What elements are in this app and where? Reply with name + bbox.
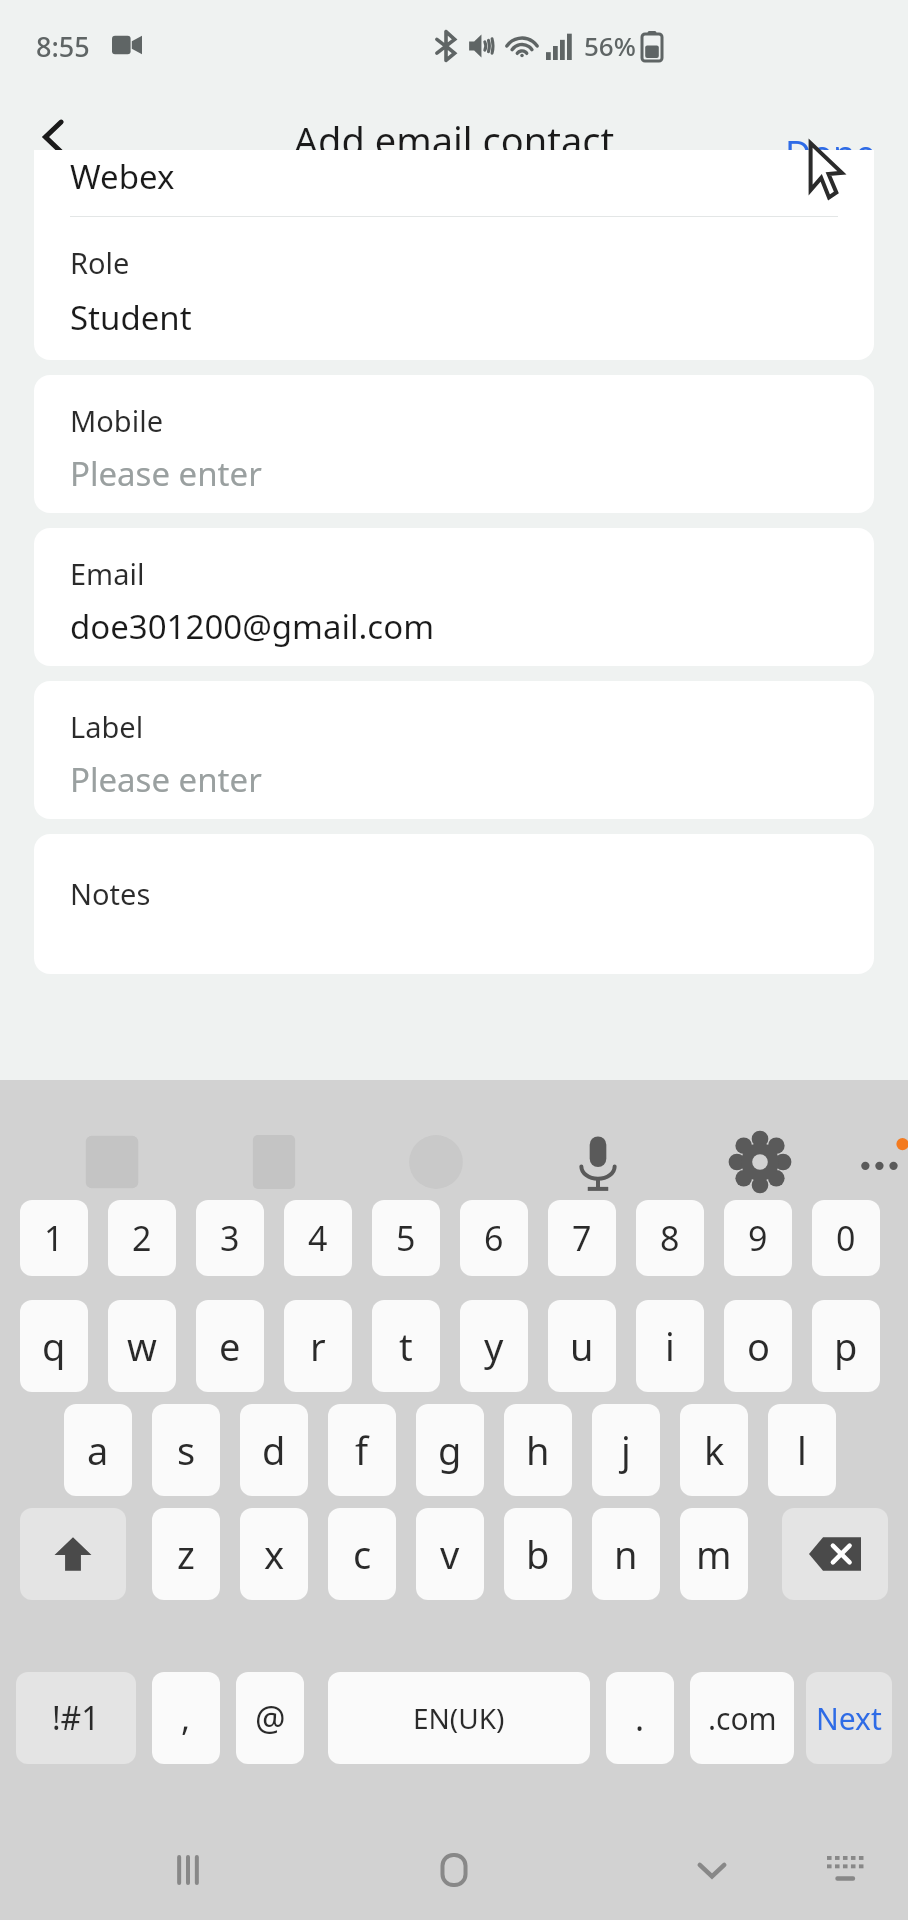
- staticText: 1: [44, 1215, 64, 1261]
- button[interactable]: .com: [690, 1672, 794, 1764]
- staticText: Student: [70, 295, 192, 340]
- button[interactable]: !#1: [16, 1672, 136, 1764]
- button[interactable]: Switch keyboard: [818, 1842, 874, 1898]
- staticText: @: [255, 1695, 286, 1741]
- button[interactable]: 4: [284, 1200, 352, 1276]
- staticText: !#1: [52, 1696, 100, 1740]
- staticText: 9: [748, 1215, 768, 1261]
- staticText: 56%: [584, 28, 636, 63]
- button[interactable]: 2: [108, 1200, 176, 1276]
- staticText: o: [747, 1320, 770, 1372]
- staticText: Done: [785, 129, 876, 178]
- staticText: t: [399, 1320, 413, 1372]
- staticText: .: [635, 1695, 645, 1741]
- staticText: e: [219, 1320, 241, 1372]
- button[interactable]: y: [460, 1300, 528, 1392]
- button[interactable]: GIF: [242, 1130, 306, 1194]
- button[interactable]: w: [108, 1300, 176, 1392]
- staticText: .com: [708, 1698, 777, 1739]
- button[interactable]: Mobile: [34, 375, 874, 513]
- button[interactable]: u: [548, 1300, 616, 1392]
- staticText: f: [355, 1424, 369, 1476]
- staticText: l: [797, 1424, 807, 1476]
- button[interactable]: h: [504, 1404, 572, 1496]
- staticText: z: [177, 1528, 195, 1580]
- button[interactable]: 5: [372, 1200, 440, 1276]
- button[interactable]: b: [504, 1508, 572, 1600]
- button[interactable]: k: [680, 1404, 748, 1496]
- staticText: x: [264, 1528, 285, 1580]
- staticText: p: [834, 1320, 858, 1372]
- button[interactable]: Emoji: [404, 1130, 468, 1194]
- button[interactable]: ,: [152, 1672, 220, 1764]
- button[interactable]: 0: [812, 1200, 880, 1276]
- staticText: j: [621, 1424, 631, 1476]
- button[interactable]: Email: [34, 528, 874, 666]
- button[interactable]: .: [606, 1672, 674, 1764]
- staticText: 5: [396, 1215, 416, 1261]
- staticText: Email: [70, 554, 145, 593]
- button[interactable]: v: [416, 1508, 484, 1600]
- button[interactable]: o: [724, 1300, 792, 1392]
- button[interactable]: j: [592, 1404, 660, 1496]
- button[interactable]: c: [328, 1508, 396, 1600]
- button[interactable]: 8: [636, 1200, 704, 1276]
- staticText: ,: [181, 1695, 191, 1741]
- button[interactable]: Shift: [20, 1508, 126, 1600]
- staticText: 0: [836, 1215, 856, 1261]
- button[interactable]: @: [236, 1672, 304, 1764]
- button[interactable]: Webex: [34, 150, 874, 360]
- staticText: a: [87, 1424, 109, 1476]
- staticText: y: [484, 1320, 504, 1372]
- button[interactable]: 3: [196, 1200, 264, 1276]
- button[interactable]: i: [636, 1300, 704, 1392]
- button[interactable]: s: [152, 1404, 220, 1496]
- button[interactable]: EN(UK): [328, 1672, 590, 1764]
- staticText: r: [310, 1320, 326, 1372]
- staticText: m: [696, 1528, 732, 1580]
- button[interactable]: 9: [724, 1200, 792, 1276]
- button[interactable]: Back: [20, 102, 90, 172]
- button[interactable]: 1: [20, 1200, 88, 1276]
- staticText: Next: [816, 1698, 882, 1739]
- button[interactable]: Next: [806, 1672, 892, 1764]
- button[interactable]: Hide keyboard: [684, 1842, 740, 1898]
- button[interactable]: g: [416, 1404, 484, 1496]
- button[interactable]: e: [196, 1300, 264, 1392]
- button[interactable]: r: [284, 1300, 352, 1392]
- staticText: 2: [132, 1215, 152, 1261]
- button[interactable]: Label: [34, 681, 874, 819]
- button[interactable]: Notes: [34, 834, 874, 974]
- button[interactable]: 6: [460, 1200, 528, 1276]
- staticText: Please enter: [70, 451, 262, 496]
- button[interactable]: q: [20, 1300, 88, 1392]
- button[interactable]: p: [812, 1300, 880, 1392]
- staticText: h: [526, 1424, 550, 1476]
- button[interactable]: Recents: [160, 1842, 216, 1898]
- button[interactable]: t: [372, 1300, 440, 1392]
- button[interactable]: d: [240, 1404, 308, 1496]
- staticText: w: [127, 1320, 157, 1372]
- button[interactable]: m: [680, 1508, 748, 1600]
- button[interactable]: Done: [785, 129, 876, 178]
- button[interactable]: Stickers: [80, 1130, 144, 1194]
- staticText: b: [526, 1528, 550, 1580]
- staticText: s: [177, 1424, 196, 1476]
- button[interactable]: Voice input: [566, 1130, 630, 1194]
- button[interactable]: n: [592, 1508, 660, 1600]
- button[interactable]: Home: [426, 1842, 482, 1898]
- button[interactable]: Backspace: [782, 1508, 888, 1600]
- button[interactable]: More options: [850, 1130, 908, 1194]
- button[interactable]: 7: [548, 1200, 616, 1276]
- button[interactable]: a: [64, 1404, 132, 1496]
- button[interactable]: Keyboard settings: [728, 1130, 792, 1194]
- staticText: 7: [572, 1215, 592, 1261]
- staticText: 4: [308, 1215, 328, 1261]
- button[interactable]: x: [240, 1508, 308, 1600]
- button[interactable]: l: [768, 1404, 836, 1496]
- staticText: q: [42, 1320, 66, 1372]
- button[interactable]: f: [328, 1404, 396, 1496]
- button[interactable]: z: [152, 1508, 220, 1600]
- staticText: doe301200@gmail.com: [70, 604, 434, 649]
- staticText: 8:55: [36, 28, 90, 65]
